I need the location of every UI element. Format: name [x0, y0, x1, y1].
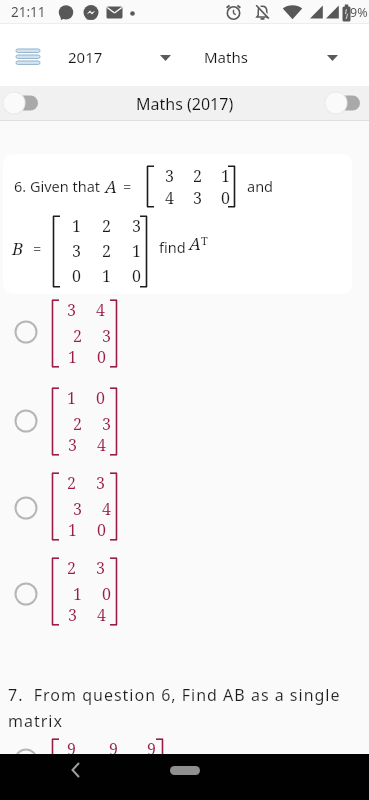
button[interactable] — [13, 581, 39, 607]
staticText: B — [12, 237, 24, 260]
staticText: 0 — [102, 583, 111, 605]
staticText: AT — [189, 232, 208, 255]
button[interactable] — [8, 553, 148, 631]
button[interactable] — [15, 49, 41, 66]
staticText: 3 — [165, 165, 174, 187]
staticText: 2 — [73, 325, 82, 347]
button[interactable]: 2017 — [56, 24, 176, 86]
staticText: = — [33, 238, 42, 258]
button[interactable] — [8, 383, 148, 461]
staticText: 1 — [132, 240, 141, 262]
staticText: and — [247, 176, 274, 196]
button[interactable] — [13, 747, 39, 773]
staticText: 3 — [102, 325, 111, 347]
staticText: 2017 — [68, 47, 103, 67]
staticText: 1 — [221, 165, 230, 187]
staticText: 0 — [221, 187, 230, 209]
staticText: 0 — [72, 265, 81, 287]
button[interactable] — [13, 408, 39, 434]
staticText: 1 — [73, 583, 82, 605]
button[interactable] — [2, 91, 39, 115]
staticText: 3 — [73, 498, 82, 520]
staticText: 3 — [132, 215, 141, 237]
staticText: 3 — [68, 604, 77, 626]
staticText: 2 — [193, 165, 202, 187]
staticText: 4 — [102, 498, 111, 520]
staticText: 3 — [72, 240, 81, 262]
button[interactable] — [8, 295, 148, 373]
button[interactable] — [324, 91, 361, 115]
button[interactable] — [170, 766, 200, 775]
button[interactable] — [64, 758, 88, 782]
staticText: 9% — [350, 4, 368, 21]
staticText: 9 — [67, 738, 76, 760]
staticText: 0 — [97, 519, 106, 541]
staticText: 2 — [67, 557, 76, 579]
staticText: matrix — [8, 710, 63, 732]
staticText: 0 — [96, 387, 105, 409]
staticText: 0 — [132, 265, 141, 287]
staticText: 1 — [68, 346, 77, 368]
staticText: 9 — [147, 738, 156, 760]
staticText: 1 — [72, 215, 81, 237]
button[interactable] — [13, 495, 39, 521]
staticText: 7. From question 6, Find AB as a single — [8, 684, 341, 706]
button[interactable] — [13, 319, 39, 345]
staticText: 3 — [67, 299, 76, 321]
staticText: A — [105, 175, 117, 198]
staticText: 2 — [102, 215, 111, 237]
staticText: find — [159, 237, 186, 257]
staticText: 0 — [97, 346, 106, 368]
staticText: = — [123, 176, 132, 196]
staticText: 3 — [102, 413, 111, 435]
staticText: 6. Given that — [14, 176, 101, 196]
staticText: 1 — [102, 265, 111, 287]
staticText: Maths (2017) — [136, 93, 234, 115]
staticText: 1 — [67, 387, 76, 409]
staticText: 21:11 — [11, 3, 46, 21]
button[interactable]: Maths — [196, 24, 346, 86]
staticText: 3 — [96, 472, 105, 494]
staticText: 3 — [68, 434, 77, 456]
staticText: 4 — [165, 187, 174, 209]
staticText: 2 — [102, 240, 111, 262]
staticText: 3 — [193, 187, 202, 209]
staticText: 4 — [97, 604, 106, 626]
staticText: 4 — [97, 434, 106, 456]
staticText: 4 — [96, 299, 105, 321]
staticText: Maths — [204, 47, 248, 67]
staticText: 1 — [68, 519, 77, 541]
staticText: 3 — [96, 557, 105, 579]
button[interactable] — [8, 468, 148, 546]
staticText: 2 — [67, 472, 76, 494]
staticText: 9 — [109, 738, 118, 760]
staticText: 2 — [73, 413, 82, 435]
